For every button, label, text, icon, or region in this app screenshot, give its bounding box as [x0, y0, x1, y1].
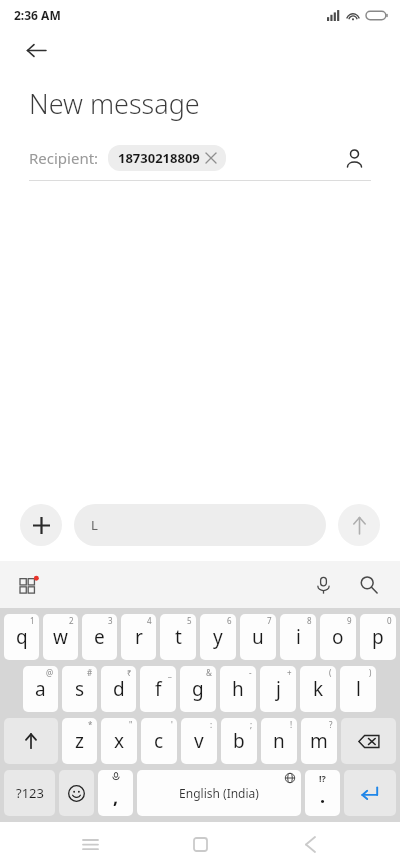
- staticText: o: [332, 624, 344, 650]
- staticText: 0: [387, 615, 392, 626]
- button[interactable]: n: [261, 718, 297, 764]
- button[interactable]: a: [23, 666, 58, 712]
- staticText: 3: [108, 615, 113, 626]
- button[interactable]: Comma: [98, 770, 133, 816]
- button[interactable]: Home: [180, 824, 220, 864]
- button[interactable]: Send: [338, 504, 380, 546]
- button[interactable]: Recents: [70, 824, 110, 864]
- staticText: +: [287, 667, 292, 678]
- staticText: 5: [187, 615, 192, 626]
- staticText: 7: [267, 615, 272, 626]
- staticText: 6: [227, 615, 232, 626]
- button[interactable]: z: [62, 718, 97, 764]
- staticText: w: [53, 624, 68, 650]
- staticText: 2: [69, 615, 74, 626]
- button[interactable]: Attach: [20, 504, 62, 546]
- button[interactable]: g: [180, 666, 216, 712]
- button[interactable]: Add contact: [337, 141, 371, 175]
- button[interactable]: Back: [18, 32, 54, 68]
- staticText: ": [129, 719, 133, 730]
- staticText: j: [276, 676, 281, 702]
- button[interactable]: ?123: [4, 770, 55, 816]
- staticText: g: [192, 676, 204, 702]
- button[interactable]: x: [101, 718, 137, 764]
- staticText: 4: [147, 615, 152, 626]
- button[interactable]: h: [220, 666, 256, 712]
- staticText: m: [310, 728, 328, 754]
- button[interactable]: k: [300, 666, 336, 712]
- button[interactable]: j: [260, 666, 296, 712]
- button[interactable]: u: [240, 614, 276, 660]
- button[interactable]: Emoji: [59, 770, 94, 816]
- button[interactable]: y: [200, 614, 236, 660]
- button[interactable]: c: [141, 718, 177, 764]
- button[interactable]: s: [62, 666, 97, 712]
- staticText: ): [369, 667, 372, 678]
- staticText: 1: [30, 615, 35, 626]
- staticText: e: [94, 624, 105, 650]
- button[interactable]: w: [43, 614, 78, 660]
- button[interactable]: Back: [290, 824, 330, 864]
- button[interactable]: t: [160, 614, 196, 660]
- button[interactable]: e: [82, 614, 117, 660]
- staticText: ?123: [16, 784, 44, 802]
- staticText: Recipient:: [29, 148, 99, 168]
- button[interactable]: Voice input: [306, 568, 340, 602]
- button[interactable]: d: [101, 666, 136, 712]
- staticText: @: [46, 667, 54, 678]
- button[interactable]: l: [340, 666, 376, 712]
- staticText: x: [114, 728, 125, 754]
- staticText: (: [329, 667, 332, 678]
- button[interactable]: L: [74, 504, 326, 546]
- staticText: z: [75, 728, 84, 754]
- button[interactable]: p: [360, 614, 396, 660]
- button[interactable]: v: [181, 718, 217, 764]
- staticText: d: [113, 676, 125, 702]
- staticText: a: [35, 676, 46, 702]
- staticText: i: [296, 624, 301, 650]
- staticText: .: [320, 784, 326, 809]
- button[interactable]: Keyboard options: [12, 568, 46, 602]
- staticText: c: [154, 728, 164, 754]
- button[interactable]: English (India): [137, 770, 301, 816]
- staticText: u: [252, 624, 264, 650]
- staticText: b: [233, 728, 245, 754]
- button[interactable]: Search: [352, 568, 386, 602]
- staticText: 9: [347, 615, 352, 626]
- staticText: t: [175, 624, 182, 650]
- button[interactable]: q: [4, 614, 39, 660]
- staticText: s: [75, 676, 85, 702]
- staticText: 8: [307, 615, 312, 626]
- button[interactable]: i: [280, 614, 316, 660]
- staticText: *: [88, 719, 93, 730]
- staticText: l: [356, 676, 361, 702]
- staticText: q: [16, 624, 28, 650]
- button[interactable]: r: [121, 614, 156, 660]
- button[interactable]: Shift: [4, 718, 58, 764]
- staticText: ,: [113, 785, 119, 810]
- staticText: L: [91, 516, 98, 534]
- staticText: -: [249, 667, 252, 678]
- staticText: ;: [250, 719, 253, 730]
- staticText: ': [171, 719, 173, 730]
- button[interactable]: m: [301, 718, 337, 764]
- staticText: y: [213, 624, 223, 650]
- staticText: _: [168, 667, 172, 678]
- button[interactable]: f: [140, 666, 176, 712]
- button[interactable]: b: [221, 718, 257, 764]
- staticText: h: [232, 676, 244, 702]
- button[interactable]: Enter: [344, 770, 396, 816]
- staticText: n: [273, 728, 285, 754]
- staticText: p: [372, 624, 384, 650]
- staticText: 18730218809: [118, 149, 200, 167]
- button[interactable]: o: [320, 614, 356, 660]
- button[interactable]: 18730218809: [108, 145, 226, 171]
- staticText: r: [135, 624, 143, 650]
- staticText: !?: [319, 772, 326, 784]
- button[interactable]: Period: [305, 770, 340, 816]
- staticText: New message: [29, 85, 200, 122]
- staticText: v: [194, 728, 204, 754]
- staticText: :: [210, 719, 213, 730]
- staticText: &: [206, 667, 212, 678]
- button[interactable]: Backspace: [341, 718, 396, 764]
